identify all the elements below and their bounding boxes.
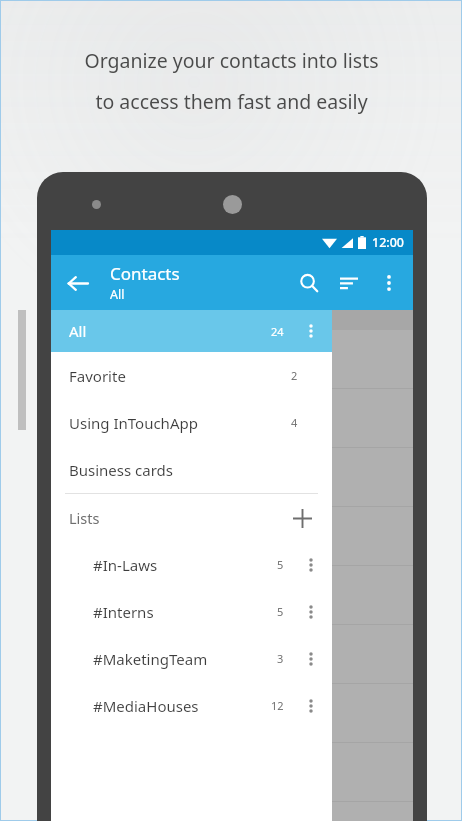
staticText: 4 <box>291 415 298 430</box>
staticText: 24 <box>271 324 284 339</box>
staticText: Allen <box>111 458 144 477</box>
button[interactable]: Charles <box>51 389 413 447</box>
button[interactable]: More options for All <box>296 316 326 346</box>
staticText: Using InTouchApp <box>69 413 198 433</box>
button[interactable]: Favorite <box>51 352 332 399</box>
button[interactable]: Add list <box>288 504 316 532</box>
button[interactable]: Search <box>289 263 329 303</box>
staticText: 5 <box>277 557 284 572</box>
button[interactable]: Sort <box>329 263 369 303</box>
staticText: Green <box>111 480 146 496</box>
staticText: Smith <box>111 362 144 378</box>
button[interactable]: Barbara <box>51 625 413 683</box>
button[interactable]: #Interns <box>51 588 332 635</box>
staticText: 12:00 <box>372 234 405 251</box>
button[interactable]: Michelle <box>51 566 413 624</box>
staticText: Business cards <box>69 460 173 480</box>
staticText: FREQUENT <box>61 313 113 327</box>
staticText: 3 <box>277 651 284 666</box>
staticText: Andrew <box>111 340 162 359</box>
button[interactable]: Back <box>57 263 97 303</box>
staticText: Owens <box>111 657 150 673</box>
button[interactable]: Betty <box>51 684 413 742</box>
staticText: #MediaHouses <box>93 696 199 716</box>
staticText: 5 <box>277 604 284 619</box>
button[interactable]: Andrew <box>51 330 413 388</box>
button[interactable]: More options for #MediaHouses <box>296 691 326 721</box>
button[interactable]: Allen <box>51 448 413 506</box>
staticText: Lists <box>69 508 100 528</box>
staticText: Moore <box>111 598 148 614</box>
staticText: #Interns <box>93 602 154 622</box>
button[interactable]: All <box>51 310 332 352</box>
button[interactable]: Lists <box>51 494 332 541</box>
staticText: #MaketingTeam <box>93 649 208 669</box>
button[interactable]: More options for #In-Laws <box>296 550 326 580</box>
staticText: All <box>110 286 125 303</box>
staticText: Favorite <box>69 366 126 386</box>
staticText: 12 <box>271 698 284 713</box>
staticText: All <box>69 321 87 341</box>
button[interactable]: Anna <box>51 507 413 565</box>
staticText: Betty <box>111 694 146 713</box>
button[interactable]: More options <box>369 263 409 303</box>
staticText: 2 <box>291 368 298 383</box>
button[interactable]: More options for #MaketingTeam <box>296 644 326 674</box>
button[interactable]: Business cards <box>51 446 332 493</box>
button[interactable]: #MediaHouses <box>51 682 332 729</box>
staticText: to access them fast and easily <box>95 88 368 115</box>
button[interactable]: #In-Laws <box>51 541 332 588</box>
button[interactable]: Using InTouchApp <box>51 399 332 446</box>
staticText: Contacts <box>110 262 180 285</box>
staticText: Organize your contacts into lists <box>84 47 379 74</box>
button[interactable]: #MaketingTeam <box>51 635 332 682</box>
button[interactable]: More options for #Interns <box>296 597 326 627</box>
staticText: #In-Laws <box>93 555 158 575</box>
button[interactable]: David <box>51 743 413 801</box>
staticText: Parker <box>111 421 149 437</box>
